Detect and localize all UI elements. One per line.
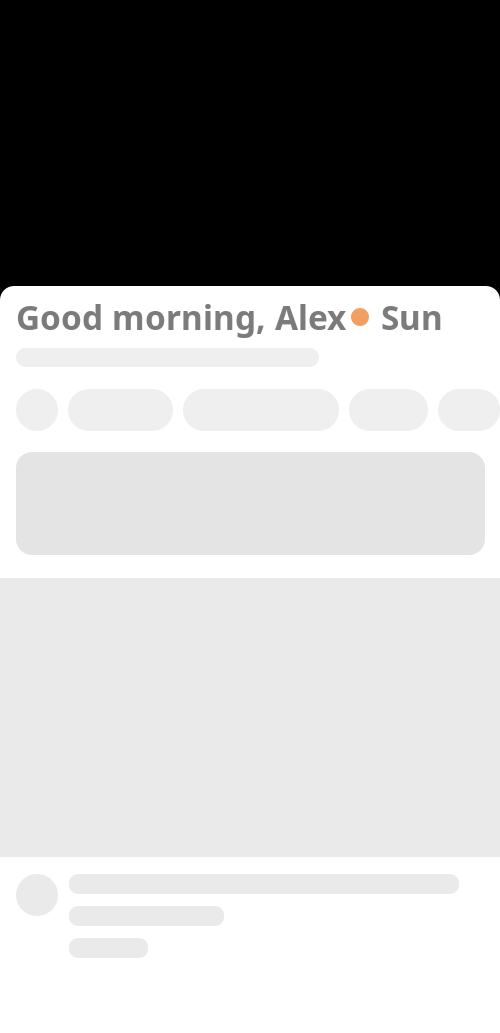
button[interactable]: Filter 3 — [349, 389, 428, 431]
button[interactable]: Filter 1 — [68, 389, 173, 431]
button[interactable]: All filters — [16, 389, 58, 431]
button[interactable]: Filter 4 — [438, 389, 500, 431]
staticText: Sun — [381, 295, 443, 339]
staticText: Good morning, Alex — [16, 295, 346, 339]
button[interactable]: Loading item — [0, 874, 500, 958]
button[interactable]: Filter 2 — [183, 389, 339, 431]
